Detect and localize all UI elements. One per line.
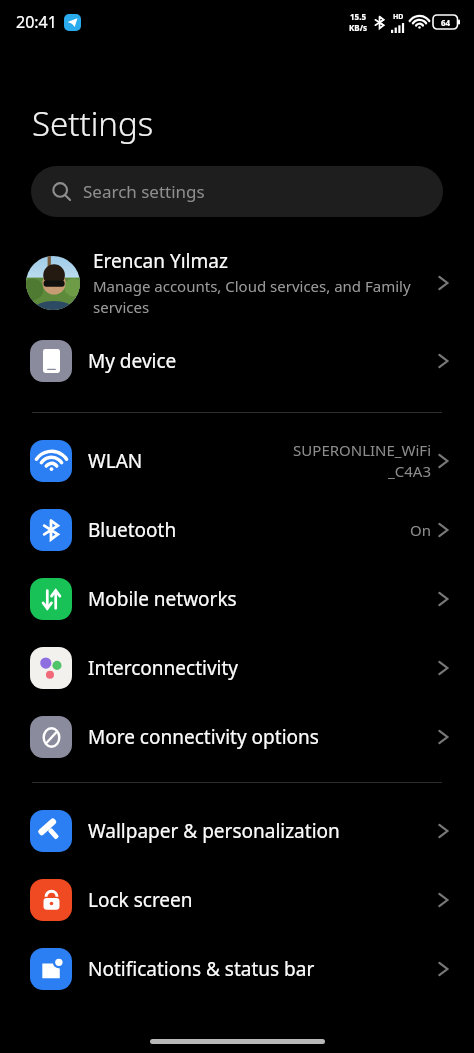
button[interactable]: Search settings	[31, 166, 443, 217]
button[interactable]: Bluetooth	[0, 495, 474, 564]
button[interactable]: Erencan Yılmaz	[0, 240, 474, 326]
staticText: Notifications & status bar	[88, 956, 315, 982]
staticText: Wallpaper & personalization	[88, 818, 340, 844]
staticText: 64	[441, 17, 451, 28]
button[interactable]: Lock screen	[0, 865, 474, 934]
staticText: SUPERONLINE_WiFi _C4A3	[293, 440, 431, 482]
staticText: Settings	[32, 101, 154, 146]
other: WLAN	[40, 450, 63, 473]
button[interactable]: My device	[0, 332, 474, 389]
staticText: Search settings	[83, 180, 205, 203]
staticText: My device	[88, 348, 437, 374]
staticText: WLAN	[88, 448, 143, 474]
button[interactable]: Mobile networks	[0, 564, 474, 633]
staticText: On	[410, 520, 431, 540]
staticText: Bluetooth	[88, 517, 177, 543]
button[interactable]: WLAN	[0, 426, 474, 495]
staticText: Mobile networks	[88, 586, 237, 612]
staticText: HD	[393, 12, 404, 22]
button[interactable]: Notifications & status bar	[0, 934, 474, 1003]
button[interactable]: Wallpaper & personalization	[0, 796, 474, 865]
staticText: Lock screen	[88, 887, 193, 913]
staticText: 15.5	[350, 11, 366, 22]
staticText: KB/s	[349, 22, 367, 33]
staticText: More connectivity options	[88, 724, 319, 750]
staticText: 20:41	[16, 11, 57, 33]
staticText: Interconnectivity	[88, 655, 239, 681]
staticText: Manage accounts, Cloud services, and Fam…	[93, 276, 429, 318]
button[interactable]: Interconnectivity	[0, 633, 474, 702]
button[interactable]: More connectivity options	[0, 702, 474, 771]
staticText: Erencan Yılmaz	[93, 248, 228, 274]
